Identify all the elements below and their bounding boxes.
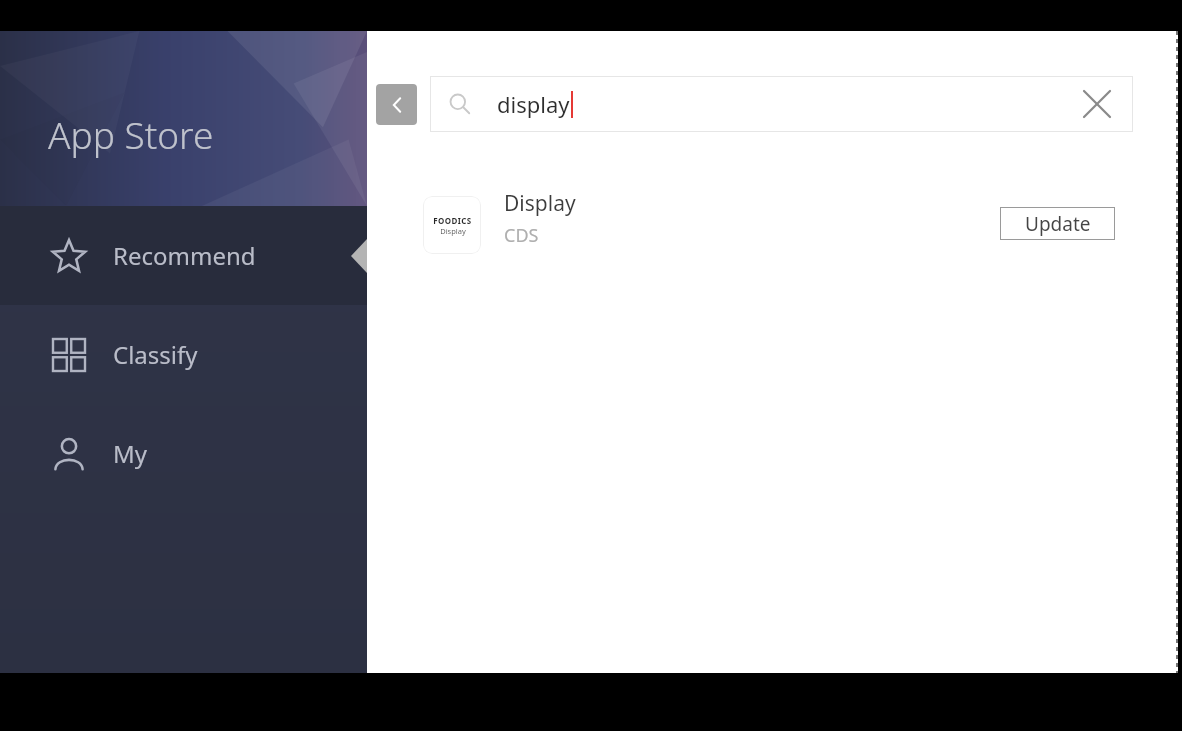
button[interactable]: Back [376, 84, 417, 125]
staticText: FOODICS [433, 215, 472, 226]
staticText: Recommend [113, 239, 256, 272]
staticText: Classify [113, 338, 198, 371]
button[interactable]: Recommend [0, 206, 367, 305]
staticText: My [113, 437, 148, 470]
button[interactable]: Clear search [1075, 82, 1119, 126]
staticText: App Store [48, 109, 214, 159]
staticText: Display [440, 226, 466, 236]
button[interactable]: My [0, 404, 367, 503]
staticText: Update [1025, 211, 1091, 237]
staticText: CDS [504, 223, 539, 248]
staticText: display [497, 89, 570, 119]
button[interactable]: Classify [0, 305, 367, 404]
button[interactable]: FOODICS [367, 176, 1178, 286]
button[interactable]: display [430, 76, 1133, 132]
button[interactable]: Update [1000, 207, 1115, 240]
staticText: Display [504, 189, 576, 218]
